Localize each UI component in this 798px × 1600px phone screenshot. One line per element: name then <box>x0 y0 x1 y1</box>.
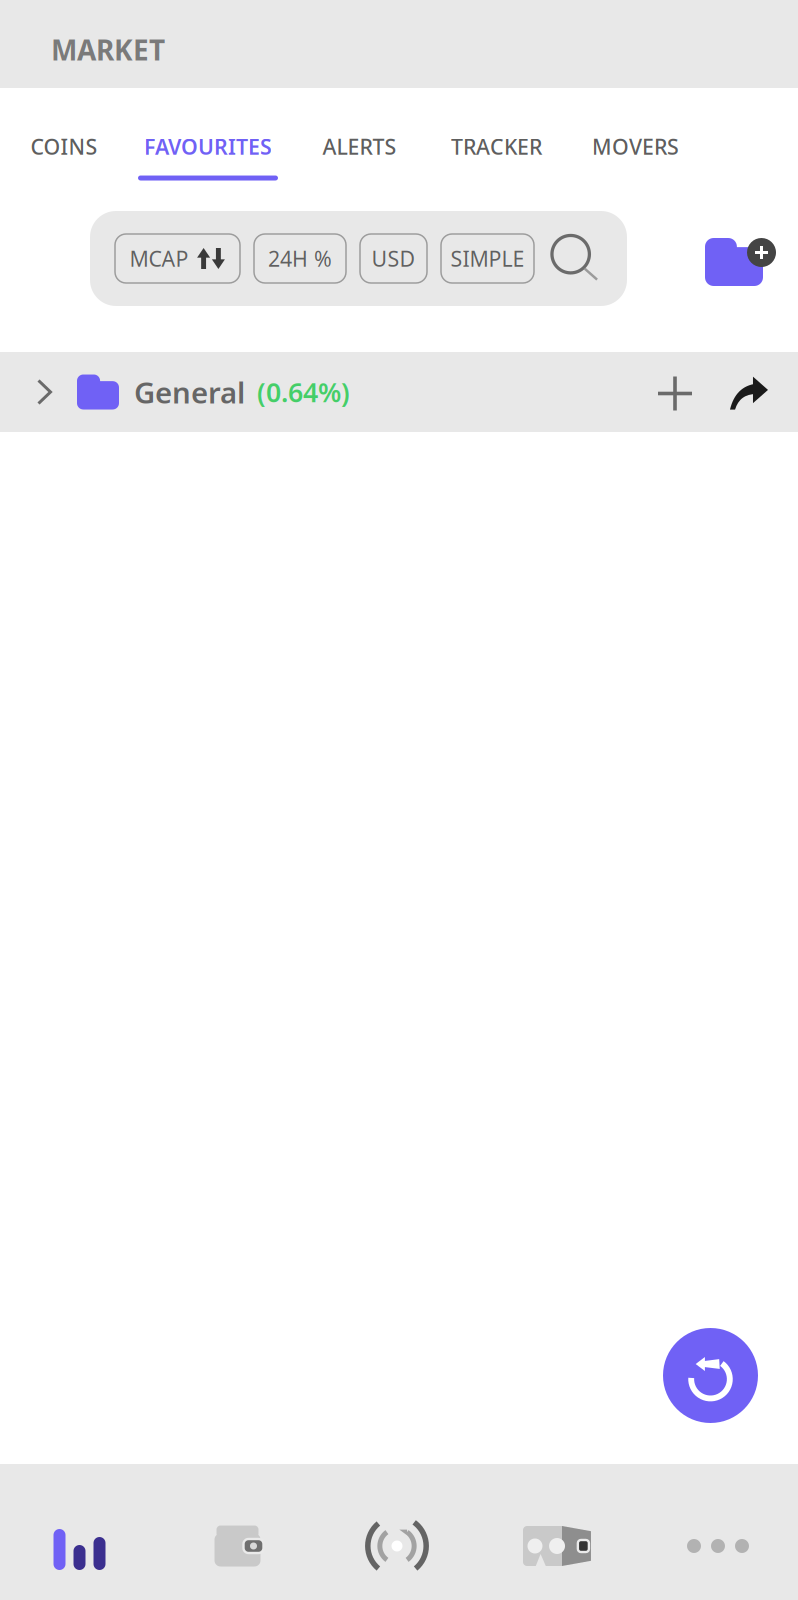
button[interactable]: New folder <box>705 211 776 331</box>
button[interactable]: Market <box>0 1478 158 1600</box>
button[interactable]: MCAP <box>115 234 240 283</box>
button[interactable]: 24H % <box>254 234 346 283</box>
staticText: MCAP <box>129 244 188 273</box>
staticText: General <box>134 372 245 411</box>
staticText: (0.64%) <box>257 374 350 410</box>
button[interactable]: Search <box>548 234 602 282</box>
staticText: MARKET <box>51 31 165 68</box>
staticText: TRACKER <box>451 132 542 161</box>
staticText: MOVERS <box>592 132 679 161</box>
staticText: SIMPLE <box>450 244 524 273</box>
staticText: 24H % <box>268 244 332 273</box>
button[interactable]: Portfolio <box>158 1478 316 1600</box>
button[interactable]: VR headset <box>477 1478 637 1600</box>
button[interactable]: Alerts <box>316 1478 477 1600</box>
button[interactable]: COINS <box>6 88 122 188</box>
button[interactable]: Refresh <box>663 1328 758 1423</box>
staticText: FAVOURITES <box>144 132 272 161</box>
button[interactable]: General <box>0 352 798 432</box>
staticText: COINS <box>30 132 97 161</box>
button[interactable]: FAVOURITES <box>122 88 294 188</box>
button[interactable]: USD <box>360 234 427 283</box>
button[interactable]: More <box>637 1478 798 1600</box>
button[interactable]: SIMPLE <box>441 234 534 283</box>
button[interactable]: TRACKER <box>425 88 568 188</box>
staticText: ALERTS <box>322 132 396 161</box>
button[interactable]: MOVERS <box>568 88 703 188</box>
staticText: USD <box>371 244 415 273</box>
button[interactable]: ALERTS <box>294 88 425 188</box>
